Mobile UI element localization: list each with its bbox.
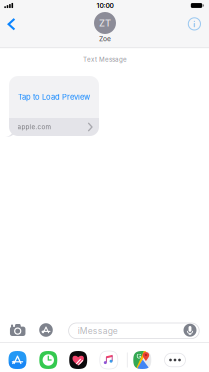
button[interactable]: Details — [182, 9, 206, 39]
button[interactable]: Maps — [130, 348, 154, 372]
button[interactable]: Apps — [35, 319, 57, 341]
staticText: Text Message — [83, 56, 127, 63]
staticText: apple.com — [17, 123, 50, 131]
button[interactable]: App Store — [5, 348, 29, 372]
staticText: 10:00 — [96, 2, 113, 10]
staticText: iMessage — [78, 326, 118, 336]
staticText: Tap to Load Preview — [18, 92, 90, 102]
staticText: Zoe — [99, 35, 111, 43]
button[interactable]: Digital Touch — [66, 348, 90, 372]
button[interactable]: Camera — [7, 319, 29, 341]
staticText: G — [136, 352, 141, 360]
button[interactable]: Recents — [36, 348, 60, 372]
button[interactable]: Music — [97, 348, 121, 372]
button[interactable]: More apps — [162, 348, 188, 372]
staticText: ZT — [99, 17, 111, 29]
button[interactable]: Back — [0, 9, 22, 39]
button[interactable]: Record audio message — [182, 322, 198, 338]
